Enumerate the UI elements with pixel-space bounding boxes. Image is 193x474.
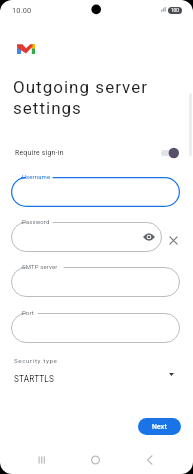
- staticText: SMTP server: [22, 263, 58, 270]
- staticText: Outgoing server settings: [13, 77, 169, 118]
- button[interactable]: Username: [11, 177, 180, 207]
- staticText: 100: [171, 8, 179, 13]
- button[interactable]: Clear text: [167, 234, 180, 247]
- button[interactable]: Show password: [142, 230, 156, 244]
- staticText: Security type: [14, 357, 58, 364]
- button[interactable]: Port: [11, 313, 180, 343]
- button[interactable]: Require sign-in: [161, 147, 179, 159]
- staticText: Require sign-in: [15, 149, 64, 157]
- button[interactable]: Security type: [0, 352, 193, 388]
- button[interactable]: Require sign-in: [0, 142, 193, 164]
- staticText: STARTTLS: [14, 374, 54, 384]
- button[interactable]: Back: [136, 450, 164, 470]
- button[interactable]: Password: [11, 222, 162, 252]
- button[interactable]: Next: [138, 418, 181, 435]
- button[interactable]: SMTP server: [11, 267, 180, 297]
- button[interactable]: Home: [82, 450, 110, 470]
- staticText: Port: [22, 309, 34, 316]
- staticText: Password: [22, 218, 50, 225]
- staticText: Username: [22, 173, 51, 180]
- staticText: Next: [152, 423, 167, 431]
- button[interactable]: Recent apps: [28, 450, 56, 470]
- staticText: 10.00: [12, 6, 32, 15]
